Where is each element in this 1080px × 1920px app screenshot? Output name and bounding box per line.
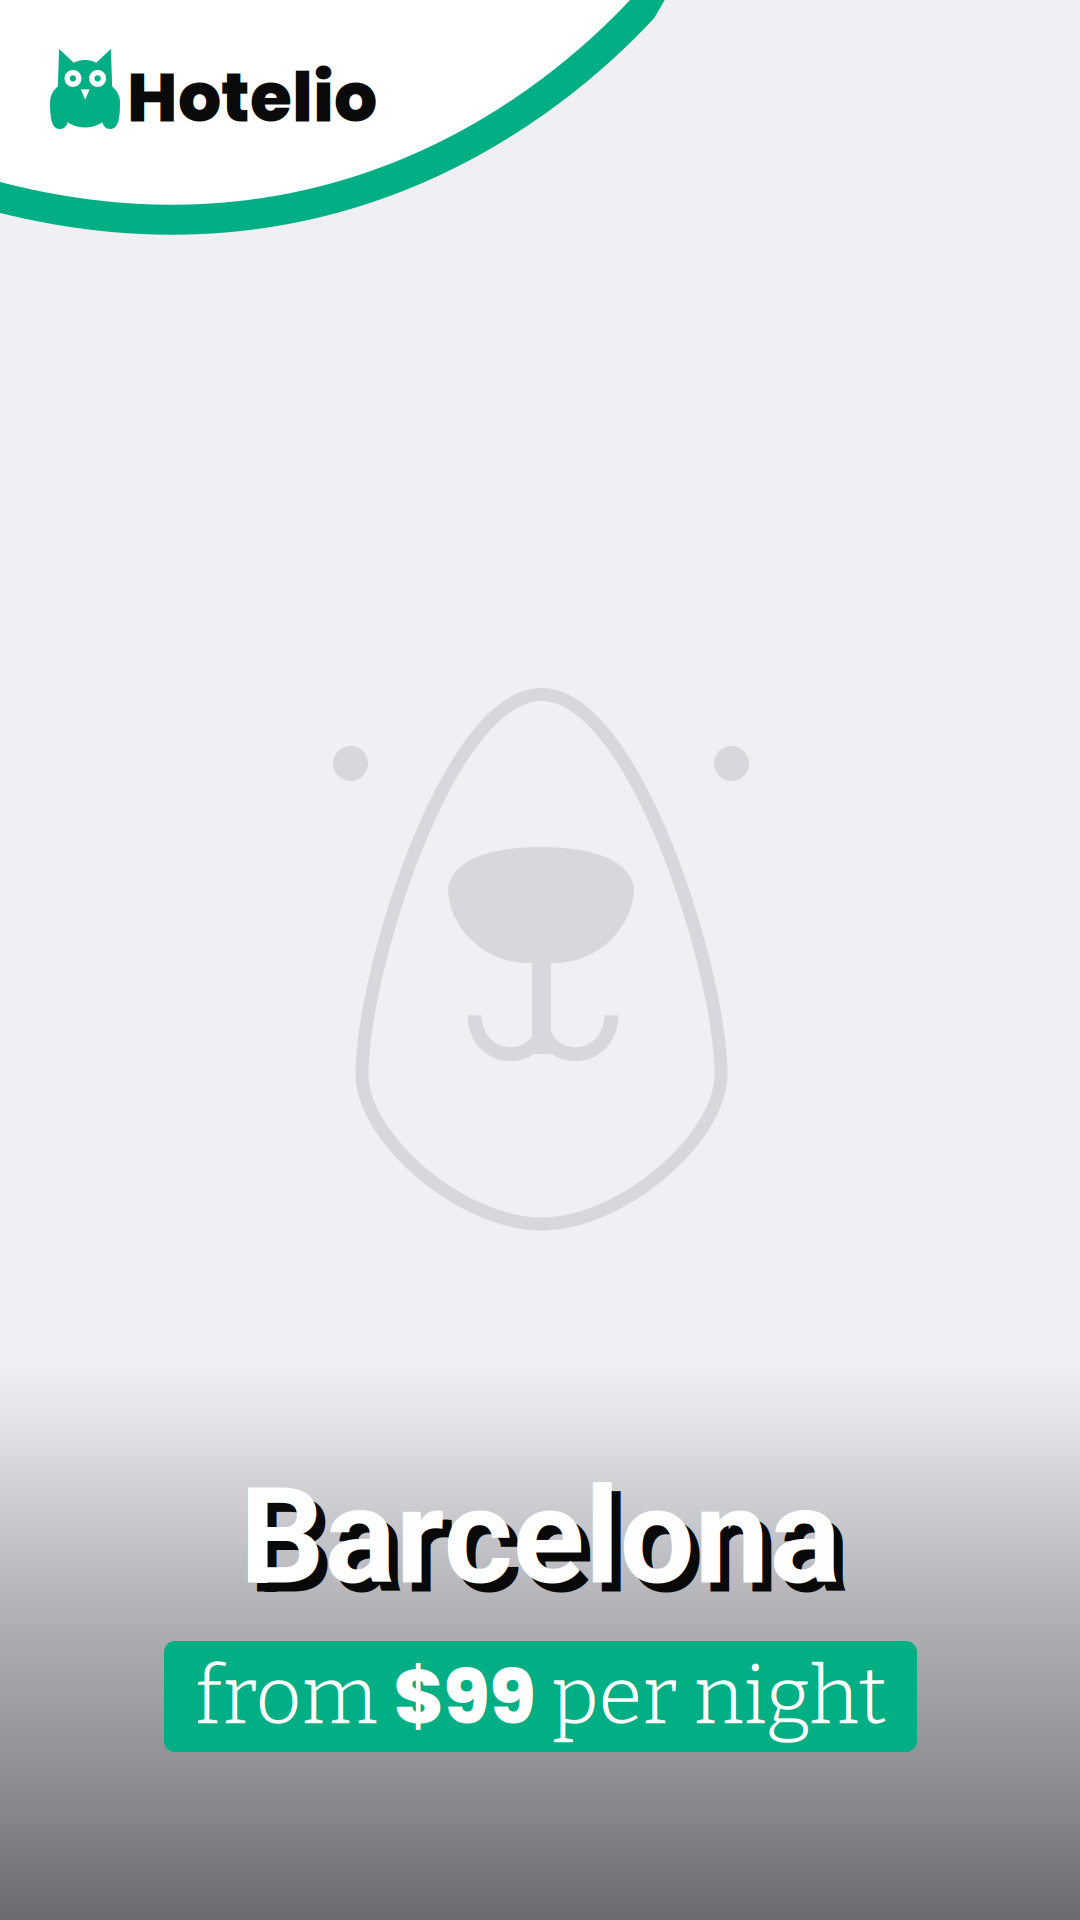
staticText: $99 xyxy=(393,1643,535,1750)
staticText: Barcelona xyxy=(248,1468,849,1624)
staticText: per night xyxy=(535,1648,886,1744)
button[interactable]: Hotelio xyxy=(0,0,420,150)
staticText: Hotelio xyxy=(127,50,377,145)
button[interactable]: from xyxy=(164,1641,917,1752)
staticText: from xyxy=(194,1648,393,1744)
staticText: Barcelona xyxy=(239,1459,840,1615)
